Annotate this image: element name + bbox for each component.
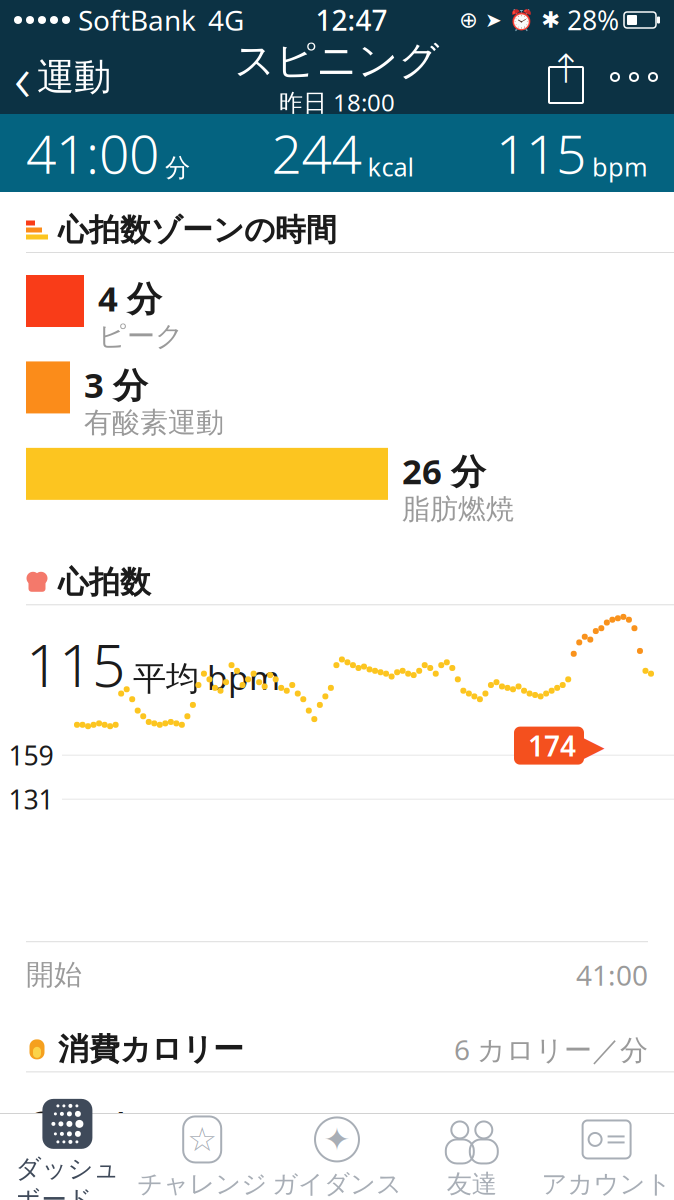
staticText: ✦ <box>323 1121 350 1158</box>
staticText: 4G <box>208 1 244 39</box>
staticText: スピニング <box>234 36 439 85</box>
staticText: ▶ <box>577 725 605 766</box>
staticText: ガイダンス <box>272 1168 402 1199</box>
staticText: 174 <box>528 727 576 764</box>
staticText: ピーク <box>98 319 184 353</box>
button[interactable]: ‹ <box>0 40 125 114</box>
button[interactable]: アカウント <box>539 1114 674 1200</box>
staticText: 115 <box>26 625 125 703</box>
staticText: ✱ <box>541 7 560 33</box>
staticText: 26 分 <box>402 448 486 494</box>
staticText: ダッシュボード <box>15 1153 119 1200</box>
staticText: ↑ <box>549 46 583 92</box>
staticText: 4 分 <box>98 275 162 321</box>
staticText: 昨日 18:00 <box>279 86 395 118</box>
staticText: 6 カロリー／分 <box>454 1031 648 1068</box>
staticText: 平均 <box>133 658 199 699</box>
staticText: 244 <box>271 118 361 188</box>
staticText: bpm <box>207 655 280 699</box>
staticText: 3 分 <box>84 361 148 407</box>
staticText: 消費カロリー <box>58 1030 244 1068</box>
staticText: 運動 <box>37 54 111 100</box>
staticText: 28% <box>567 2 619 38</box>
staticText: 12:47 <box>315 1 387 39</box>
staticText: ⊕ <box>459 7 478 33</box>
staticText: 6 <box>47 1198 62 1200</box>
staticText: ⏰ <box>509 9 534 31</box>
staticText: ➤ <box>485 9 502 31</box>
staticText: SoftBank <box>78 1 196 39</box>
staticText: 脂肪燃焼 <box>402 492 514 526</box>
staticText: 159 <box>8 737 53 773</box>
staticText: カロリー <box>137 1124 284 1168</box>
staticText: 41:00 <box>26 118 159 188</box>
staticText: 開始 <box>26 958 82 992</box>
staticText: bpm <box>592 150 648 183</box>
button[interactable]: ダッシュボード <box>0 1114 135 1200</box>
staticText: 心拍数 <box>58 563 151 601</box>
staticText: アカウント <box>542 1168 672 1199</box>
staticText: kcal <box>367 150 414 183</box>
staticText: 115 <box>496 118 586 188</box>
staticText: 244 <box>26 1090 131 1172</box>
staticText: 131 <box>8 781 53 817</box>
staticText: 分 <box>165 152 190 183</box>
button[interactable]: 友達 <box>404 1114 539 1200</box>
staticText: チャレンジ <box>137 1168 267 1199</box>
staticText: 友達 <box>447 1168 497 1199</box>
staticText: 有酸素運動 <box>84 405 224 440</box>
button[interactable]: その他 <box>594 40 674 114</box>
button[interactable]: 共有 <box>538 40 594 114</box>
staticText: ☆ <box>187 1120 217 1158</box>
staticText: 心拍数ゾーンの時間 <box>58 211 337 249</box>
staticText: 41:00 <box>576 956 648 993</box>
button[interactable]: ☆ <box>135 1114 270 1200</box>
staticText: ‹ <box>14 34 31 119</box>
button[interactable]: ✦ <box>270 1114 404 1200</box>
